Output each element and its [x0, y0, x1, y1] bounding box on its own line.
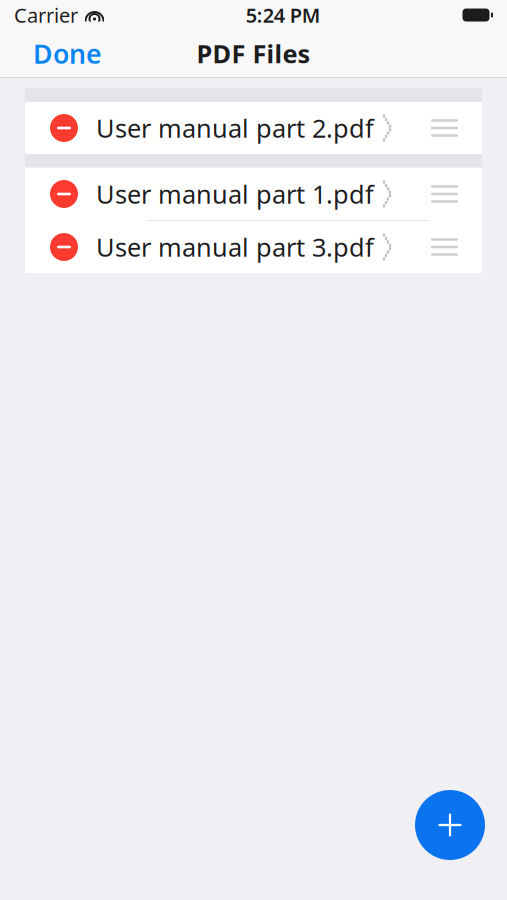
staticText: User manual part 1.pdf — [96, 177, 374, 211]
button[interactable]: Reorder User manual part 1.pdf — [422, 170, 467, 217]
staticText: 5:24 PM — [246, 2, 321, 28]
staticText: Carrier — [14, 2, 78, 28]
button[interactable]: Remove User manual part 3.pdf — [38, 221, 90, 273]
staticText: User manual part 2.pdf — [96, 111, 374, 145]
staticText: Done — [33, 36, 102, 71]
staticText: User manual part 3.pdf — [96, 230, 374, 264]
button[interactable]: User manual part 2.pdf — [25, 102, 482, 154]
button[interactable]: Done — [19, 27, 116, 80]
button[interactable]: Reorder User manual part 3.pdf — [422, 223, 467, 270]
button[interactable]: Add file — [415, 790, 485, 860]
staticText: PDF Files — [196, 37, 310, 70]
button[interactable]: Remove User manual part 1.pdf — [38, 168, 90, 220]
button[interactable]: User manual part 1.pdf — [25, 168, 482, 220]
button[interactable]: Remove User manual part 2.pdf — [38, 102, 90, 154]
button[interactable]: Reorder User manual part 2.pdf — [422, 104, 467, 151]
button[interactable]: User manual part 3.pdf — [25, 221, 482, 273]
